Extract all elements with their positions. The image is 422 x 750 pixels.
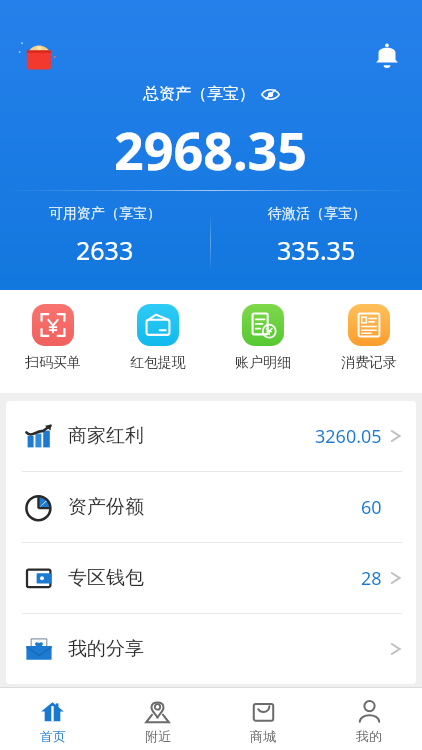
staticText: 2968.35 xyxy=(114,114,308,185)
button[interactable]: 红包提现 xyxy=(105,302,210,374)
button[interactable]: 总资产（享宝） xyxy=(143,84,280,104)
staticText: 28 xyxy=(361,566,382,591)
staticText: 消费记录 xyxy=(341,354,397,372)
staticText: 附近 xyxy=(145,728,171,744)
button[interactable]: 附近 xyxy=(105,694,210,744)
staticText: 总资产（享宝） xyxy=(143,84,255,104)
staticText: 我的 xyxy=(356,728,382,744)
staticText: 2633 xyxy=(76,233,134,267)
button[interactable]: 可用资产（享宝） xyxy=(0,205,210,267)
staticText: 60 xyxy=(361,495,382,520)
button[interactable]: 资产份额 xyxy=(6,472,416,542)
staticText: 我的分享 xyxy=(68,637,144,661)
staticText: 商城 xyxy=(250,728,276,744)
staticText: 335.35 xyxy=(277,233,356,267)
staticText: 专区钱包 xyxy=(68,566,144,590)
button[interactable]: 扫码买单 xyxy=(0,302,105,374)
staticText: 账户明细 xyxy=(235,354,291,372)
staticText: 首页 xyxy=(40,728,66,744)
staticText: 商家红利 xyxy=(68,424,144,448)
button[interactable]: Red packet xyxy=(18,36,58,76)
button[interactable]: 商城 xyxy=(210,694,316,744)
button[interactable]: 待激活（享宝） xyxy=(211,205,422,267)
staticText: 资产份额 xyxy=(68,495,144,519)
other: Toggle amount visibility xyxy=(261,88,280,101)
button[interactable]: 我的分享 xyxy=(6,614,416,684)
button[interactable]: Notifications xyxy=(370,38,404,72)
staticText: 可用资产（享宝） xyxy=(49,205,161,223)
staticText: 3260.05 xyxy=(315,424,382,449)
button[interactable]: 专区钱包 xyxy=(6,543,416,613)
button[interactable]: 消费记录 xyxy=(316,302,422,374)
button[interactable]: 账户明细 xyxy=(210,302,316,374)
button[interactable]: 商家红利 xyxy=(6,401,416,471)
staticText: 扫码买单 xyxy=(25,354,81,372)
button[interactable]: 我的 xyxy=(316,694,422,744)
staticText: 红包提现 xyxy=(130,354,186,372)
staticText: 待激活（享宝） xyxy=(268,205,366,223)
button[interactable]: 首页 xyxy=(0,694,105,744)
